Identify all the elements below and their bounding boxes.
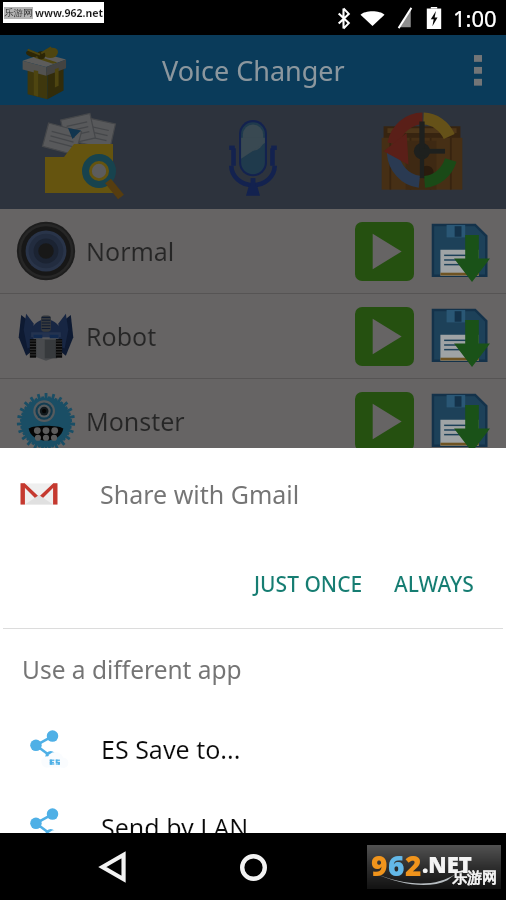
- button[interactable]: More options: [450, 42, 506, 98]
- staticText: www.962.net: [35, 6, 104, 20]
- staticText: Robot: [86, 319, 157, 353]
- staticText: 9: [371, 846, 388, 884]
- staticText: 乐游网: [4, 7, 33, 19]
- button[interactable]: ALWAYS: [384, 558, 484, 611]
- staticText: 1:00: [453, 3, 497, 33]
- staticText: Use a different app: [22, 653, 242, 686]
- button[interactable]: ES Save to...: [0, 710, 506, 788]
- button[interactable]: Record: [168, 105, 337, 209]
- button[interactable]: Browse files: [0, 105, 168, 209]
- button[interactable]: App icon: [8, 38, 72, 102]
- button[interactable]: Monster: [0, 379, 506, 463]
- staticText: ALWAYS: [394, 570, 474, 599]
- button[interactable]: Home: [228, 842, 278, 892]
- staticText: JUST ONCE: [254, 570, 363, 599]
- staticText: 6: [388, 846, 405, 884]
- staticText: Send by LAN: [101, 810, 249, 844]
- button[interactable]: Back: [88, 842, 138, 892]
- button[interactable]: JUST ONCE: [244, 558, 373, 611]
- button[interactable]: Save: [423, 209, 495, 293]
- staticText: 乐游网: [452, 869, 497, 888]
- button[interactable]: Normal: [0, 209, 506, 293]
- staticText: Normal: [86, 234, 175, 268]
- staticText: ES Save to...: [101, 732, 241, 766]
- staticText: Share with Gmail: [100, 477, 300, 511]
- staticText: Monster: [86, 404, 185, 438]
- button[interactable]: Save: [423, 294, 495, 378]
- button[interactable]: Play: [348, 379, 420, 463]
- button[interactable]: Save: [423, 379, 495, 463]
- button[interactable]: Send by LAN: [0, 788, 506, 866]
- button[interactable]: Robot: [0, 294, 506, 378]
- button[interactable]: Play: [348, 294, 420, 378]
- staticText: 2: [405, 846, 422, 884]
- staticText: Voice Changer: [162, 52, 345, 89]
- staticText: .NET: [422, 849, 472, 879]
- button[interactable]: Play: [348, 209, 420, 293]
- button[interactable]: Share with Gmail: [0, 448, 506, 540]
- button[interactable]: History: [337, 105, 506, 209]
